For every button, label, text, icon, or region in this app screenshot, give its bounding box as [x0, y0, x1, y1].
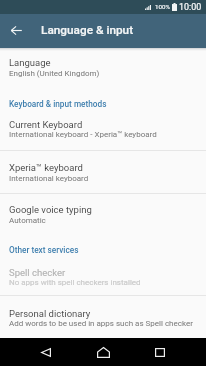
button[interactable]: Recent apps	[145, 342, 175, 362]
staticText: No apps with spell checkers installed	[9, 278, 141, 287]
staticText: Language	[9, 57, 51, 68]
button[interactable]: Back	[31, 342, 61, 362]
staticText: International keyboard	[9, 174, 89, 183]
button[interactable]: Navigate up	[9, 23, 23, 37]
staticText: Language & input	[41, 23, 134, 37]
button[interactable]: Spell checker	[0, 255, 206, 295]
staticText: 10:00	[179, 2, 202, 12]
staticText: English (United Kingdom)	[9, 69, 100, 78]
button[interactable]: Google voice typing	[0, 194, 206, 225]
button[interactable]: Personal dictionary	[0, 296, 206, 328]
staticText: Automatic	[9, 216, 46, 225]
button[interactable]: Xperia™ keyboard	[0, 151, 206, 193]
staticText: Add words to be used in apps such as Spe…	[9, 319, 193, 328]
staticText: Current Keyboard	[9, 119, 83, 130]
button[interactable]: Current Keyboard	[0, 109, 206, 150]
button[interactable]: Home	[88, 342, 118, 362]
staticText: Xperia™ keyboard	[9, 162, 83, 173]
staticText: International keyboard - Xperia™ keyboar…	[9, 130, 157, 139]
button[interactable]: Language	[0, 48, 206, 78]
staticText: Personal dictionary	[9, 308, 91, 319]
staticText: Other text services	[9, 245, 79, 255]
staticText: Spell checker	[9, 267, 66, 278]
staticText: 100%	[155, 3, 170, 10]
staticText: Keyboard & input methods	[9, 99, 107, 109]
staticText: Google voice typing	[9, 204, 92, 215]
